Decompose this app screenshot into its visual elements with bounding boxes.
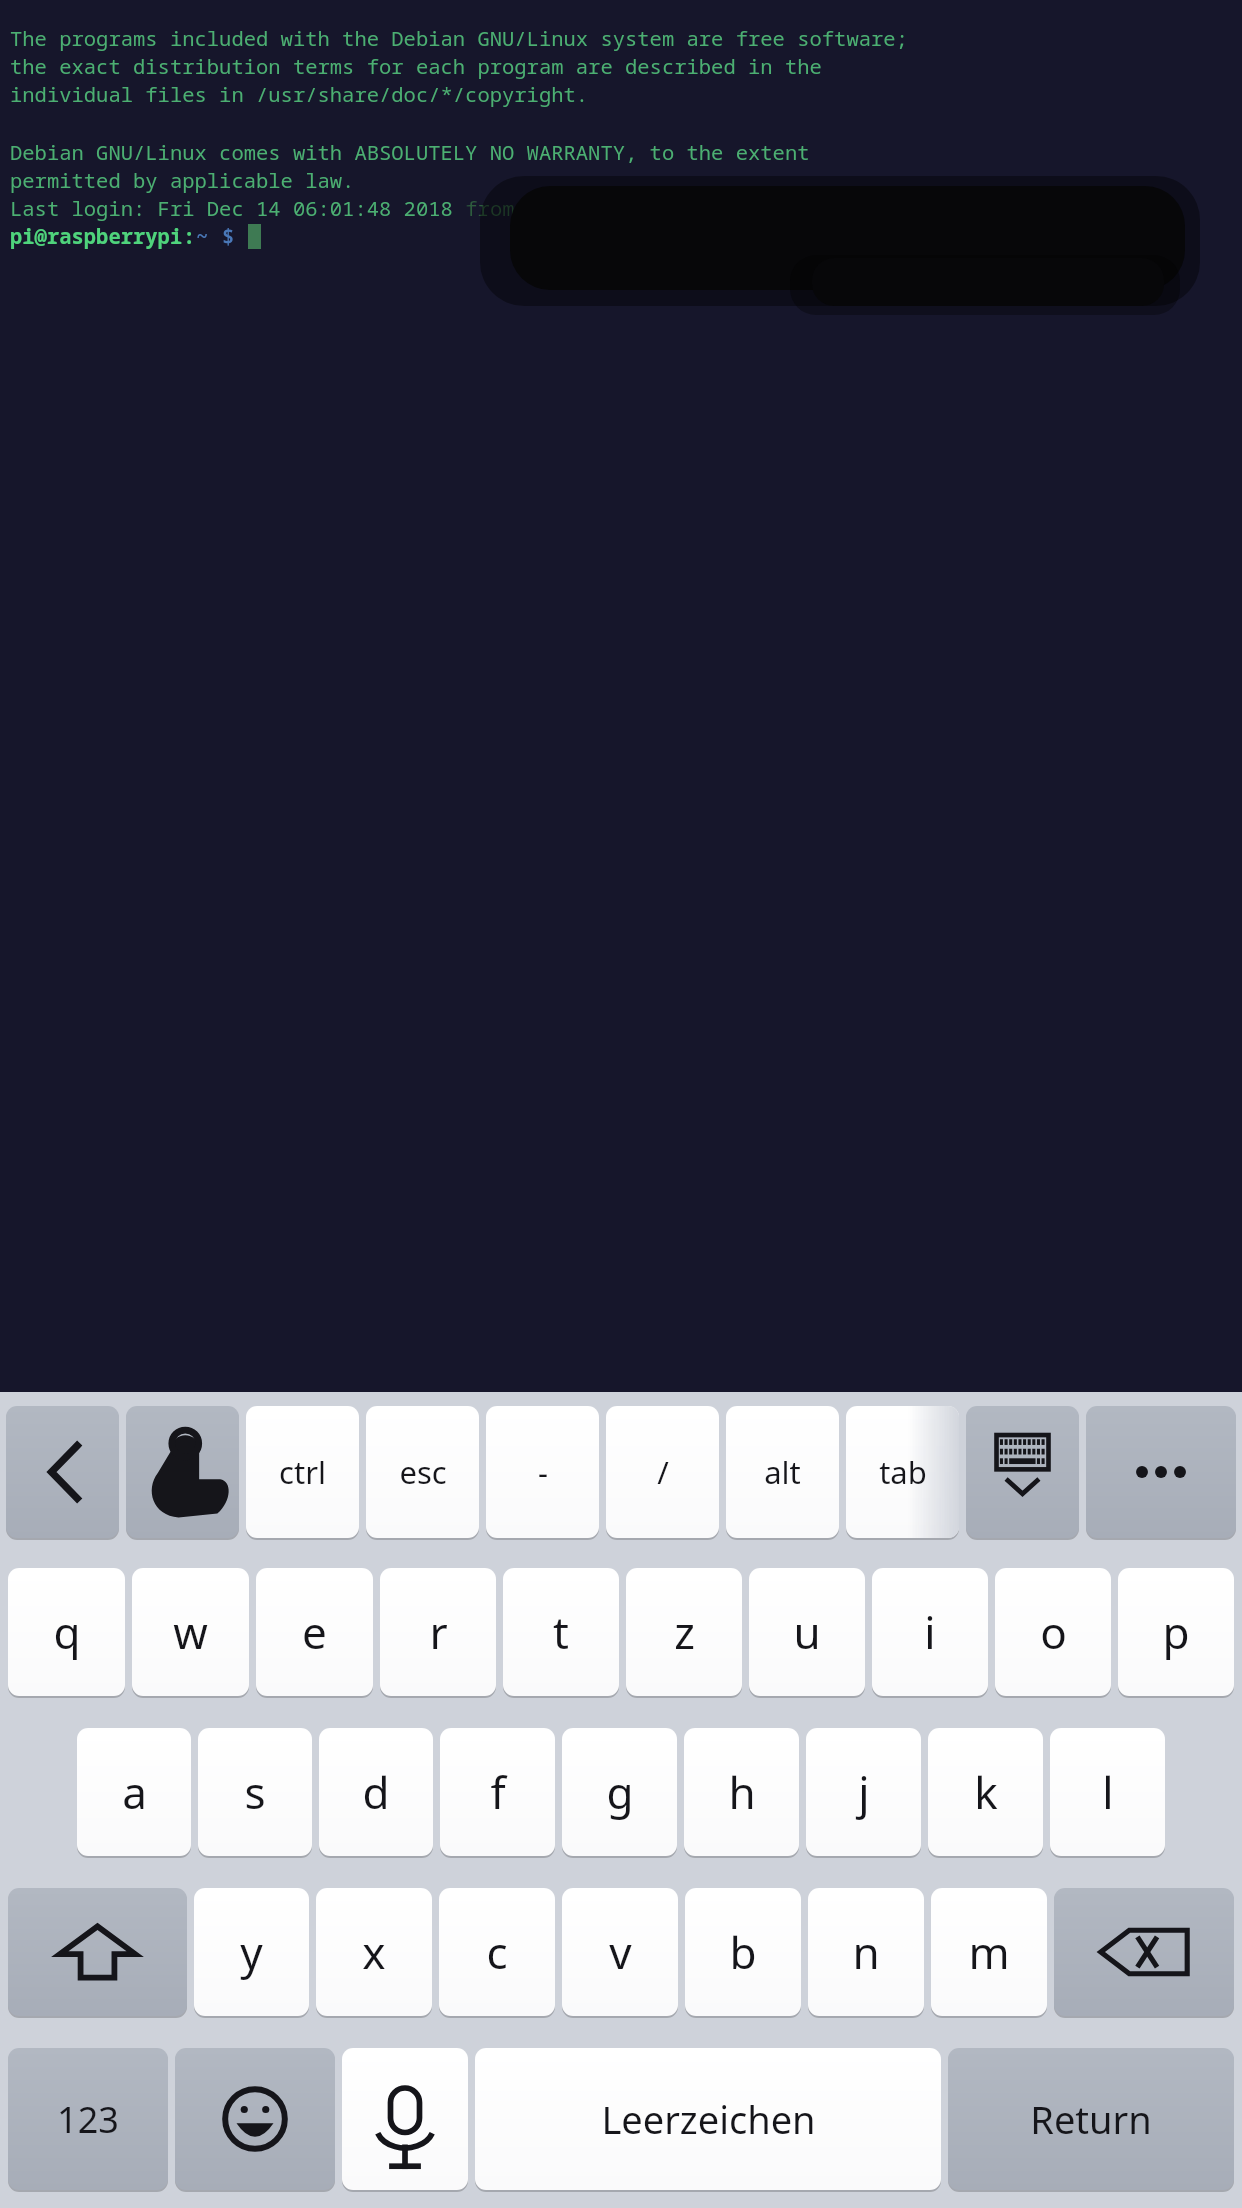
staticText: Leerzeichen	[601, 2093, 816, 2145]
staticText: s	[244, 1762, 266, 1822]
staticText: individual files in /usr/share/doc/*/cop…	[10, 80, 589, 108]
staticText: i	[924, 1602, 936, 1662]
button[interactable]: esc	[366, 1406, 479, 1538]
staticText: Last login: Fri Dec 14 06:01:48 2018	[10, 194, 453, 222]
button[interactable]: Emoji	[175, 2048, 335, 2190]
staticText: from 2003:df:5f47:1f00:201a:8b2b:24ed:fa…	[453, 194, 982, 222]
staticText: t	[553, 1602, 569, 1662]
staticText: d	[362, 1762, 390, 1822]
staticText: e	[302, 1602, 327, 1662]
staticText: n	[852, 1922, 880, 1982]
staticText: :	[183, 222, 196, 250]
staticText: w	[173, 1602, 208, 1662]
button[interactable]: c	[439, 1888, 555, 2016]
button[interactable]: o	[995, 1568, 1111, 1696]
staticText: esc	[399, 1451, 447, 1493]
staticText: permitted by applicable law.	[10, 166, 355, 194]
staticText: y	[240, 1922, 263, 1982]
button[interactable]: Return	[948, 2048, 1234, 2190]
button[interactable]: h	[684, 1728, 799, 1856]
staticText: 123	[57, 2095, 119, 2144]
button[interactable]: More options	[1086, 1406, 1236, 1538]
button[interactable]: v	[562, 1888, 678, 2016]
button[interactable]: r	[380, 1568, 496, 1696]
staticText: k	[974, 1762, 998, 1822]
button[interactable]: ctrl	[246, 1406, 359, 1538]
staticText: ~	[196, 222, 209, 250]
staticText: j	[858, 1762, 870, 1822]
button[interactable]: w	[132, 1568, 249, 1696]
staticText: p	[1162, 1602, 1190, 1662]
staticText: c	[486, 1922, 508, 1982]
staticText: The programs included with the Debian GN…	[10, 24, 908, 52]
staticText: the exact distribution terms for each pr…	[10, 52, 822, 80]
button[interactable]: t	[503, 1568, 619, 1696]
button[interactable]: i	[872, 1568, 988, 1696]
staticText: u	[793, 1602, 821, 1662]
button[interactable]: n	[808, 1888, 924, 2016]
button[interactable]: Hide keyboard	[966, 1406, 1079, 1538]
button[interactable]: q	[8, 1568, 125, 1696]
staticText: a	[122, 1762, 147, 1822]
staticText: f	[490, 1762, 506, 1822]
button[interactable]: f	[440, 1728, 555, 1856]
button[interactable]: s	[198, 1728, 312, 1856]
button[interactable]: /	[606, 1406, 719, 1538]
button[interactable]: j	[806, 1728, 921, 1856]
staticText: alt	[764, 1451, 801, 1493]
staticText: h	[728, 1762, 756, 1822]
button[interactable]: l	[1050, 1728, 1165, 1856]
staticText: r	[429, 1602, 448, 1662]
button[interactable]: Voice input	[342, 2048, 468, 2190]
staticText: q	[53, 1602, 81, 1662]
staticText: v	[609, 1922, 632, 1982]
button[interactable]: b	[685, 1888, 801, 2016]
button[interactable]: d	[319, 1728, 433, 1856]
staticText: l	[1102, 1762, 1114, 1822]
button[interactable]: Shift	[8, 1888, 187, 2016]
button[interactable]: u	[749, 1568, 865, 1696]
staticText: /	[657, 1451, 669, 1493]
staticText: g	[606, 1762, 634, 1822]
button[interactable]: p	[1118, 1568, 1234, 1696]
button[interactable]: Back	[6, 1406, 119, 1538]
staticText: m	[968, 1922, 1010, 1982]
staticText: b	[729, 1922, 757, 1982]
button[interactable]: m	[931, 1888, 1047, 2016]
button[interactable]: Leerzeichen	[475, 2048, 941, 2190]
staticText: x	[362, 1922, 386, 1982]
button[interactable]: tab	[846, 1406, 959, 1538]
button[interactable]: alt	[726, 1406, 839, 1538]
staticText: pi@raspberrypi	[10, 222, 183, 250]
button[interactable]: x	[316, 1888, 432, 2016]
staticText: Return	[1030, 2093, 1152, 2145]
button[interactable]: -	[486, 1406, 599, 1538]
button[interactable]: e	[256, 1568, 373, 1696]
button[interactable]: y	[194, 1888, 309, 2016]
staticText: -	[538, 1451, 548, 1493]
button[interactable]: 123	[8, 2048, 168, 2190]
staticText: z	[674, 1602, 695, 1662]
button[interactable]: The programs included with the Debian GN…	[0, 0, 1242, 1392]
staticText: ctrl	[279, 1451, 326, 1493]
staticText: Debian GNU/Linux comes with ABSOLUTELY N…	[10, 138, 810, 166]
staticText: $	[222, 222, 235, 250]
button[interactable]: Backspace	[1054, 1888, 1234, 2016]
button[interactable]: z	[626, 1568, 742, 1696]
button[interactable]: a	[77, 1728, 191, 1856]
staticText: tab	[879, 1451, 927, 1493]
button[interactable]: k	[928, 1728, 1043, 1856]
button[interactable]: g	[562, 1728, 677, 1856]
staticText: o	[1040, 1602, 1067, 1662]
button[interactable]: Toggle touch mode	[126, 1406, 239, 1538]
